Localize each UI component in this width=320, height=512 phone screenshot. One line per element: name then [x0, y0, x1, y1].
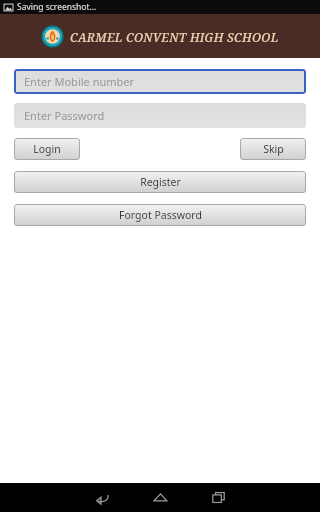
button[interactable]: Back	[73, 483, 131, 512]
button[interactable]: Register	[14, 171, 306, 193]
staticText: Saving screenshot…	[17, 1, 97, 13]
button[interactable]: Enter Password	[14, 103, 306, 128]
button[interactable]: Skip	[240, 138, 306, 160]
button[interactable]: Recent apps	[189, 483, 247, 512]
button[interactable]: Enter Mobile number	[14, 69, 306, 94]
staticText: Register	[140, 175, 181, 189]
staticText: CARMEL CONVENT HIGH SCHOOL	[70, 29, 279, 45]
staticText: Login	[33, 142, 61, 156]
staticText: Enter Mobile number	[24, 74, 135, 89]
button[interactable]: Login	[14, 138, 80, 160]
staticText: Skip	[263, 142, 284, 156]
button[interactable]: Home	[131, 483, 189, 512]
button[interactable]: Forgot Password	[14, 204, 306, 226]
staticText: Enter Password	[24, 108, 105, 123]
staticText: Forgot Password	[119, 208, 202, 222]
